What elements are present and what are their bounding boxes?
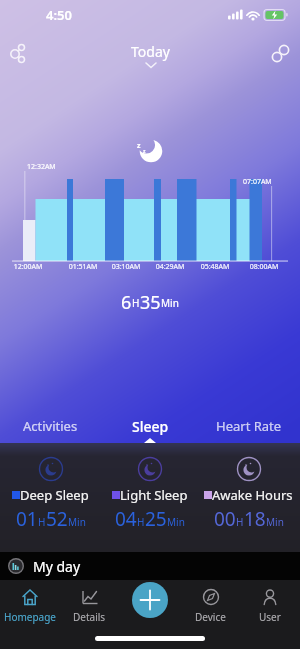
staticText: 12:32AM [27, 162, 56, 172]
staticText: Activities [23, 417, 78, 435]
staticText: 08:00AM [244, 262, 284, 272]
staticText: 03:10AM [106, 262, 146, 272]
staticText: H [38, 515, 46, 529]
button[interactable]: My day [0, 552, 300, 580]
staticText: Deep Sleep [20, 486, 89, 504]
staticText: Homepage [4, 610, 56, 624]
staticText: 04 [115, 506, 137, 532]
staticText: User [259, 610, 281, 624]
staticText: 6 [121, 290, 132, 312]
button[interactable] [268, 42, 294, 66]
staticText: z [137, 141, 141, 151]
button[interactable]: Today [110, 42, 190, 74]
staticText: Awake Hours [212, 486, 293, 504]
staticText: 01 [16, 506, 38, 532]
staticText: Sleep [132, 417, 169, 436]
staticText: 12:00AM [8, 262, 48, 272]
staticText: H [137, 515, 145, 529]
staticText: Details [73, 610, 106, 624]
staticText: 18 [244, 506, 266, 532]
button[interactable]: Heart Rate [208, 412, 290, 440]
button[interactable]: Activities [10, 412, 90, 440]
button[interactable] [132, 582, 168, 618]
staticText: Min [266, 515, 284, 529]
staticText: 52 [46, 506, 68, 532]
staticText: Min [161, 296, 179, 310]
button[interactable]: Details [59, 588, 119, 632]
staticText: Min [68, 515, 86, 529]
staticText: 35 [140, 290, 161, 312]
staticText: H [236, 515, 244, 529]
staticText: Device [195, 610, 226, 624]
staticText: H [132, 296, 140, 310]
staticText: 4:50 [46, 6, 72, 24]
staticText: 00 [214, 506, 236, 532]
staticText: 25 [145, 506, 167, 532]
button[interactable]: Device [180, 588, 240, 632]
staticText: 07:07AM [243, 177, 272, 187]
button[interactable]: Homepage [0, 588, 60, 632]
staticText: 04:29AM [150, 262, 190, 272]
button[interactable]: User [240, 588, 300, 632]
button[interactable]: Sleep [110, 412, 190, 440]
staticText: 05:48AM [195, 262, 235, 272]
staticText: 01:51AM [63, 262, 103, 272]
staticText: z [143, 148, 146, 155]
staticText: Min [167, 515, 185, 529]
staticText: Light Sleep [120, 486, 188, 504]
staticText: Today [131, 42, 170, 61]
staticText: Heart Rate [216, 417, 282, 435]
staticText: My day [33, 557, 81, 576]
button[interactable] [6, 42, 30, 66]
